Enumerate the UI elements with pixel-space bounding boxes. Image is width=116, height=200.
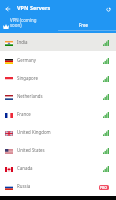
button[interactable]: VPN (coming soon)	[0, 13, 58, 33]
button[interactable]: Refresh	[103, 4, 114, 15]
staticText: United Kingdom	[17, 129, 51, 135]
button[interactable]: Russia	[0, 177, 116, 195]
staticText: Singapore	[17, 75, 38, 81]
staticText: PRO	[100, 185, 108, 190]
button[interactable]: Back	[2, 3, 13, 14]
button[interactable]: Singapore	[0, 69, 116, 87]
staticText: Free	[79, 22, 88, 28]
button[interactable]: United Kingdom	[0, 123, 116, 141]
button[interactable]: Canada	[0, 159, 116, 177]
button[interactable]: France	[0, 105, 116, 123]
staticText: France	[17, 111, 31, 117]
button[interactable]: India	[0, 33, 116, 51]
staticText: VPN (coming soon)	[10, 17, 37, 28]
staticText: Canada	[17, 165, 33, 171]
staticText: Germany	[17, 57, 37, 63]
button[interactable]: Germany	[0, 51, 116, 69]
staticText: VPN Servers	[17, 4, 51, 11]
staticText: India	[17, 39, 28, 45]
staticText: Netherlands	[17, 93, 43, 99]
button[interactable]: Netherlands	[0, 87, 116, 105]
button[interactable]: United States	[0, 141, 116, 159]
staticText: United States	[17, 147, 45, 153]
button[interactable]: Free	[58, 13, 116, 33]
staticText: Russia	[17, 183, 31, 189]
